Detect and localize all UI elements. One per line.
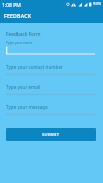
staticText: Type your message bbox=[6, 104, 48, 110]
button[interactable]: SUBMIT bbox=[6, 128, 96, 141]
staticText: Type your email bbox=[6, 84, 41, 90]
button[interactable] bbox=[6, 46, 95, 55]
staticText: FEEDBACK bbox=[4, 12, 32, 19]
staticText: 93% bbox=[93, 1, 102, 7]
button[interactable]: Type your contact number bbox=[6, 64, 95, 76]
button[interactable]: Type your email bbox=[6, 84, 95, 96]
staticText: SUBMIT bbox=[42, 132, 60, 138]
staticText: Feedback Form bbox=[6, 31, 41, 38]
staticText: 1:08 PM bbox=[2, 2, 21, 9]
staticText: Type your name bbox=[6, 40, 33, 45]
button[interactable]: Type your message bbox=[6, 104, 95, 116]
staticText: Type your contact number bbox=[6, 64, 63, 70]
